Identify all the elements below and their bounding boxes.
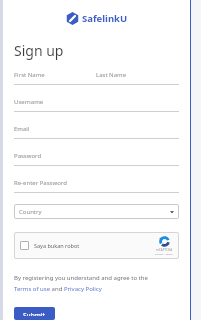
button[interactable]: Re-enter Password [14,179,179,193]
staticText: Saya bukan robot [34,242,155,249]
button[interactable]: Username [14,98,179,112]
staticText: First Name [14,71,96,79]
staticText: Terms of use and Privacy Policy [14,285,102,293]
button[interactable]: First Name [14,71,179,85]
button[interactable]: Terms of use and Privacy Policy [14,285,102,293]
staticText: reCAPTCHA [156,248,173,252]
staticText: Privacy - Terms [155,252,173,255]
button[interactable]: Email [14,125,179,139]
other: reCAPTCHA [159,236,170,247]
button[interactable]: Country [14,204,179,219]
staticText: Sign up [14,41,64,60]
button[interactable]: SafelinkU logo [3,12,190,25]
staticText: By registering you understand and agree … [14,274,148,282]
staticText: Password [14,152,42,160]
staticText: SafelinkU [82,12,128,25]
staticText: Last Name [96,71,179,79]
staticText: Email [14,125,30,133]
staticText: Re-enter Password [14,179,67,187]
other: SafelinkU logo [66,12,79,25]
button[interactable]: Saya bukan robot [14,232,179,259]
staticText: Username [14,98,44,106]
button[interactable]: Submit [14,307,55,320]
staticText: Submit [23,311,46,316]
staticText: Country [19,208,170,216]
button[interactable]: Password [14,152,179,166]
